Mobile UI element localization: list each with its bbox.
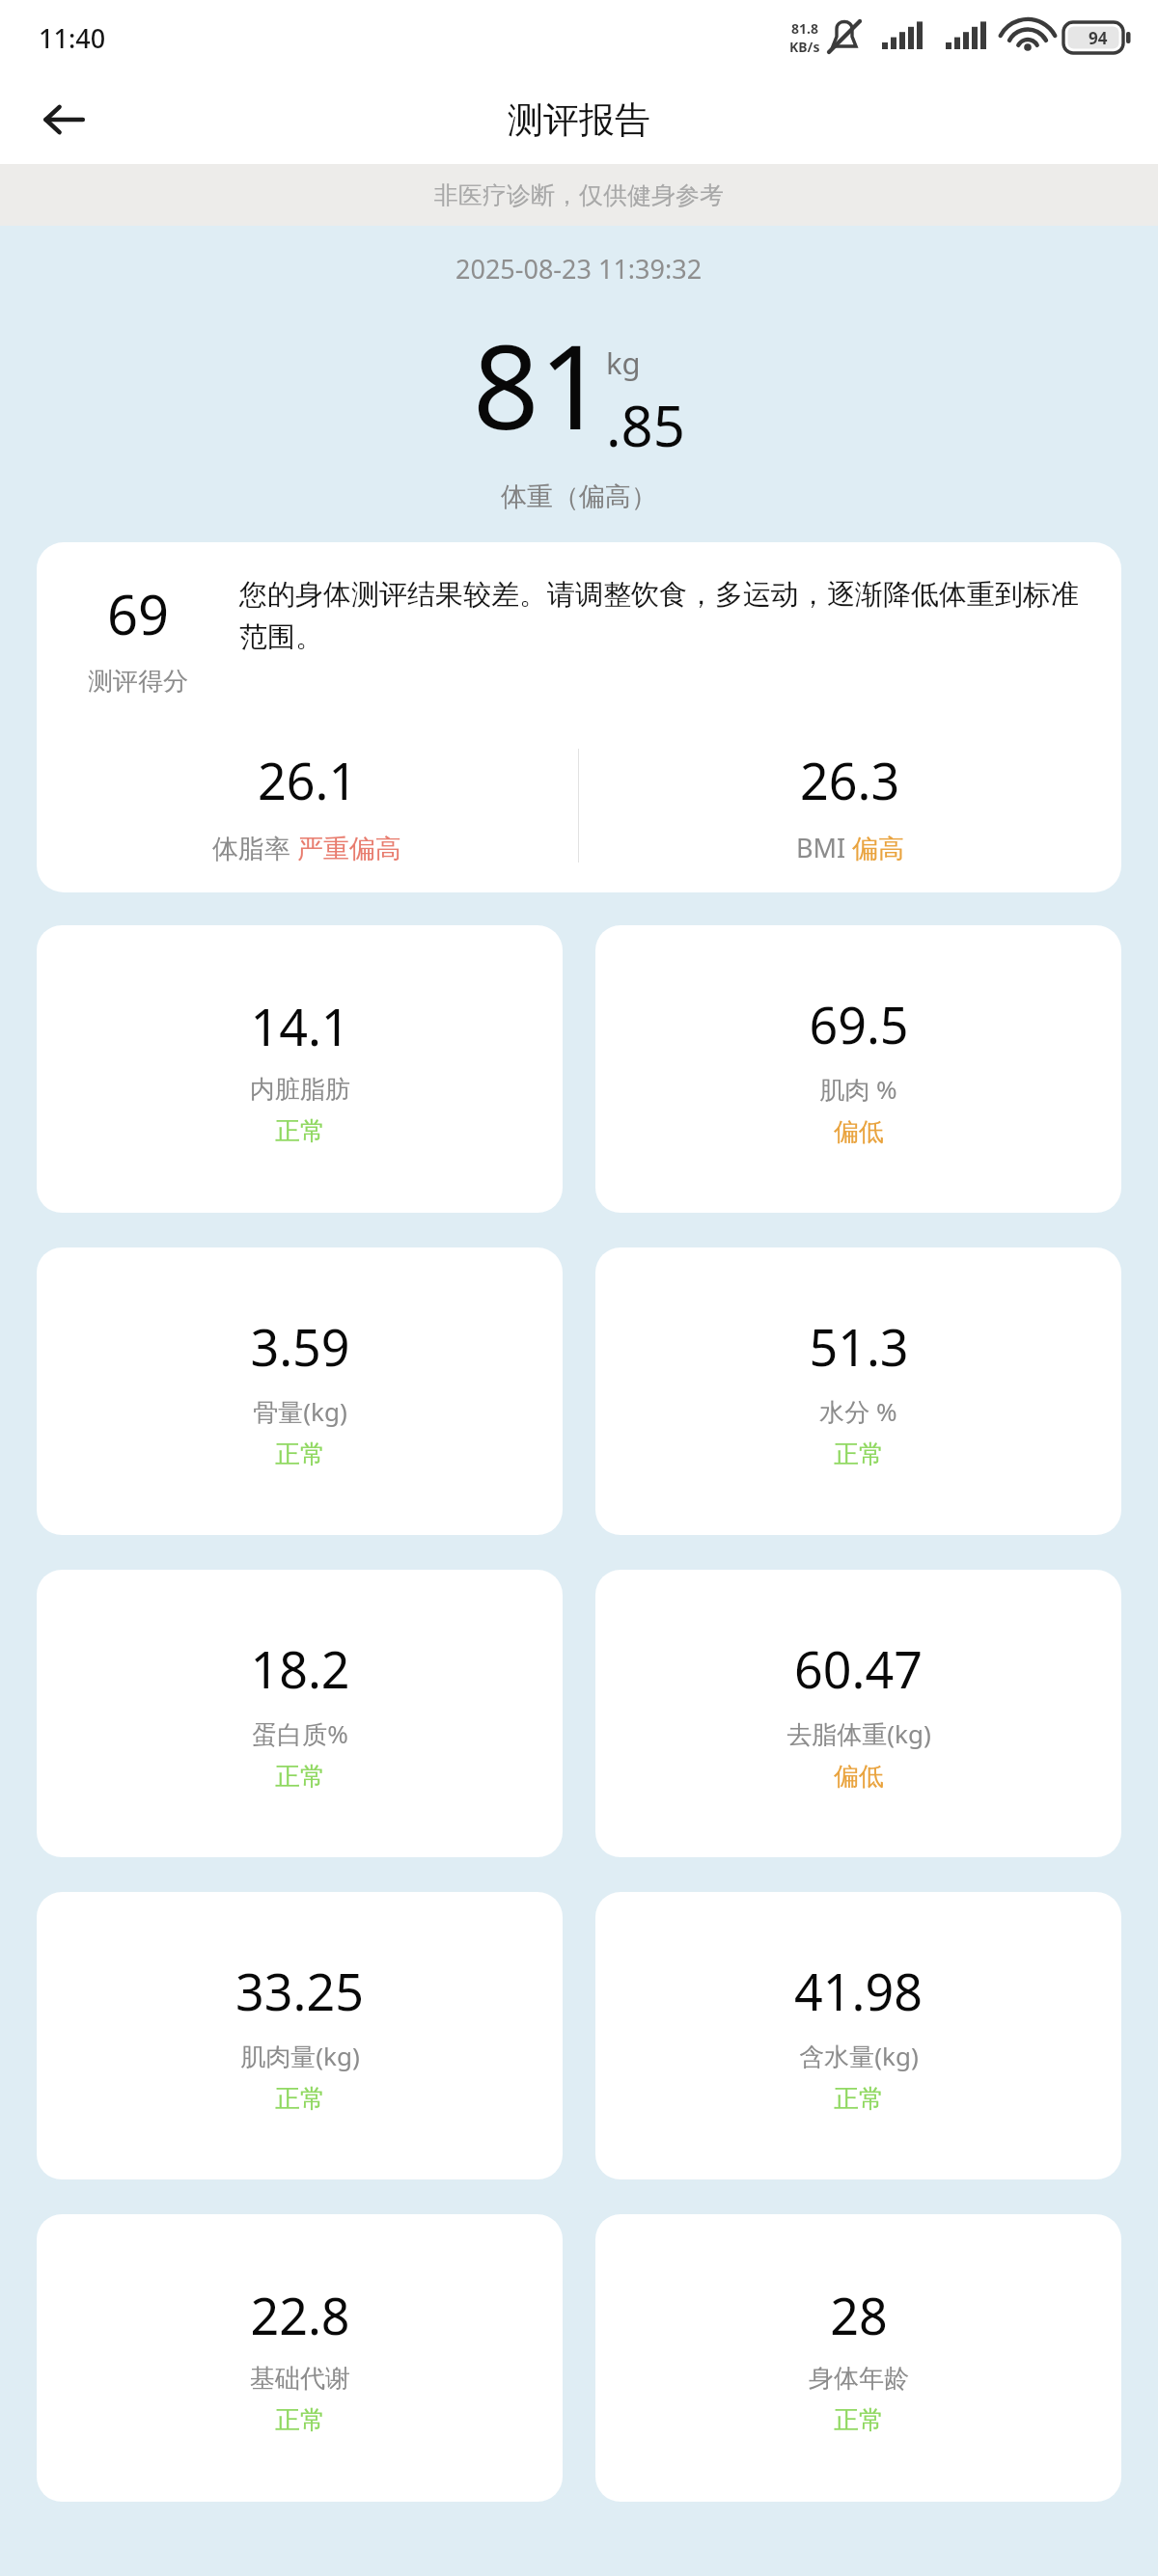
button[interactable]: 33.25 bbox=[37, 1892, 563, 2179]
staticText: BMI 偏高 bbox=[796, 830, 905, 865]
staticText: 33.25 bbox=[235, 1957, 364, 2025]
staticText: 体脂率 严重偏高 bbox=[212, 830, 402, 865]
staticText: 身体年龄 bbox=[809, 2363, 909, 2395]
button[interactable]: 28 bbox=[595, 2214, 1121, 2502]
staticText: 81.8 bbox=[791, 19, 818, 38]
button[interactable]: Back bbox=[29, 85, 98, 154]
staticText: 正常 bbox=[275, 1439, 325, 1470]
staticText: 60.47 bbox=[794, 1634, 923, 1703]
staticText: .85 bbox=[606, 387, 685, 463]
staticText: 正常 bbox=[834, 1439, 884, 1470]
staticText: 正常 bbox=[275, 1115, 325, 1147]
staticText: 2025-08-23 11:39:32 bbox=[455, 251, 703, 287]
staticText: 偏低 bbox=[834, 1761, 884, 1793]
staticText: 3.59 bbox=[250, 1312, 350, 1381]
staticText: 28 bbox=[830, 2281, 888, 2349]
staticText: 69 bbox=[107, 577, 170, 650]
staticText: 69.5 bbox=[809, 990, 909, 1058]
staticText: 22.8 bbox=[250, 2281, 350, 2349]
staticText: 内脏脂肪 bbox=[250, 1074, 350, 1106]
staticText: 正常 bbox=[834, 2083, 884, 2115]
button[interactable]: 69 bbox=[37, 542, 1121, 892]
staticText: 体重（偏高） bbox=[501, 480, 657, 513]
staticText: 偏低 bbox=[834, 1116, 884, 1148]
button[interactable]: 69.5 bbox=[595, 925, 1121, 1213]
button[interactable]: 14.1 bbox=[37, 925, 563, 1213]
button[interactable]: 22.8 bbox=[37, 2214, 563, 2502]
button[interactable]: 3.59 bbox=[37, 1247, 563, 1535]
staticText: 非医疗诊断，仅供健身参考 bbox=[434, 180, 724, 210]
staticText: 正常 bbox=[275, 1761, 325, 1793]
staticText: 肌肉 % bbox=[819, 1072, 897, 1107]
staticText: 去脂体重(kg) bbox=[786, 1716, 931, 1751]
staticText: 51.3 bbox=[809, 1312, 909, 1381]
staticText: 81 bbox=[473, 306, 606, 463]
staticText: 14.1 bbox=[250, 992, 350, 1060]
staticText: kg bbox=[606, 343, 641, 383]
staticText: 26.1 bbox=[258, 746, 358, 814]
staticText: 18.2 bbox=[250, 1634, 350, 1703]
staticText: 94 bbox=[1089, 27, 1108, 49]
staticText: 11:40 bbox=[39, 20, 106, 56]
staticText: 41.98 bbox=[794, 1957, 923, 2025]
button[interactable]: 60.47 bbox=[595, 1570, 1121, 1857]
staticText: 基础代谢 bbox=[250, 2363, 350, 2395]
staticText: 含水量(kg) bbox=[799, 2039, 919, 2073]
staticText: 您的身体测评结果较差。请调整饮食，多运动，逐渐降低体重到标准范围。 bbox=[239, 577, 1098, 654]
button[interactable]: 41.98 bbox=[595, 1892, 1121, 2179]
staticText: 正常 bbox=[275, 2083, 325, 2115]
staticText: 26.3 bbox=[800, 746, 900, 814]
staticText: 测评得分 bbox=[88, 666, 188, 698]
staticText: 肌肉量(kg) bbox=[240, 2039, 360, 2073]
staticText: 水分 % bbox=[819, 1394, 897, 1429]
staticText: KB/s bbox=[789, 38, 820, 56]
button[interactable]: 51.3 bbox=[595, 1247, 1121, 1535]
staticText: 骨量(kg) bbox=[253, 1394, 347, 1429]
button[interactable]: 18.2 bbox=[37, 1570, 563, 1857]
staticText: 蛋白质% bbox=[252, 1716, 348, 1751]
staticText: 测评报告 bbox=[508, 97, 650, 143]
staticText: 正常 bbox=[834, 2404, 884, 2436]
staticText: 正常 bbox=[275, 2404, 325, 2436]
